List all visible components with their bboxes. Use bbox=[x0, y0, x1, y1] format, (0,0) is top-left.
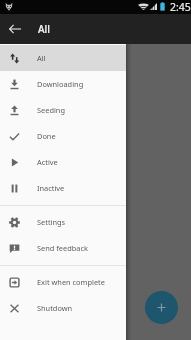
staticText: Inactive bbox=[37, 183, 65, 193]
staticText: All bbox=[37, 53, 46, 63]
staticText: Send feedback bbox=[37, 243, 88, 253]
button[interactable]: Active bbox=[0, 149, 126, 175]
staticText: 2:45 bbox=[170, 0, 191, 14]
button[interactable]: Shutdown bbox=[0, 295, 126, 321]
staticText: Shutdown bbox=[37, 303, 73, 313]
staticText: Done bbox=[37, 131, 56, 141]
button[interactable]: Seeding bbox=[0, 97, 126, 123]
staticText: Seeding bbox=[37, 105, 65, 115]
staticText: All bbox=[38, 22, 50, 36]
button[interactable]: Downloading bbox=[0, 71, 126, 97]
button[interactable]: Exit when complete bbox=[0, 269, 126, 295]
staticText: Exit when complete bbox=[37, 277, 105, 287]
staticText: Settings bbox=[37, 217, 66, 227]
button[interactable]: Done bbox=[0, 123, 126, 149]
staticText: Active bbox=[37, 157, 58, 167]
button[interactable]: Back bbox=[0, 14, 30, 44]
button[interactable]: Add torrent bbox=[145, 291, 178, 324]
staticText: Downloading bbox=[37, 79, 84, 89]
button[interactable]: Send feedback bbox=[0, 235, 126, 261]
button[interactable]: All bbox=[0, 45, 126, 71]
button[interactable]: Settings bbox=[0, 209, 126, 235]
button[interactable]: Inactive bbox=[0, 175, 126, 201]
